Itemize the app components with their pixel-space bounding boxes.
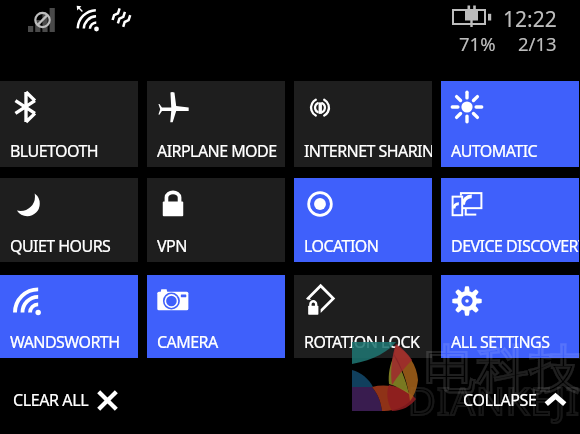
button[interactable]: COLLAPSE bbox=[463, 389, 566, 411]
staticText: WANDSWORTH bbox=[10, 331, 120, 353]
button[interactable]: BLUETOOTH bbox=[0, 81, 138, 167]
button[interactable]: VPN bbox=[147, 178, 285, 262]
button[interactable]: ROTATION LOCK bbox=[294, 275, 432, 358]
staticText: AUTOMATIC bbox=[451, 140, 538, 162]
staticText: COLLAPSE bbox=[463, 389, 537, 411]
button[interactable]: ALL SETTINGS bbox=[441, 275, 579, 358]
staticText: 2/13 bbox=[518, 31, 557, 56]
staticText: CLEAR ALL bbox=[13, 389, 89, 411]
staticText: LOCATION bbox=[304, 235, 379, 257]
staticText: 电科技 bbox=[423, 337, 580, 403]
button[interactable]: AUTOMATIC bbox=[441, 81, 579, 167]
staticText: 12:22 bbox=[503, 5, 557, 34]
staticText: DIANKEJI bbox=[408, 374, 580, 426]
staticText: ALL SETTINGS bbox=[451, 331, 550, 353]
staticText: QUIET HOURS bbox=[10, 235, 111, 257]
button[interactable]: CAMERA bbox=[147, 275, 285, 358]
button[interactable]: DEVICE DISCOVERY bbox=[441, 178, 579, 262]
button[interactable]: WANDSWORTH bbox=[0, 275, 138, 358]
button[interactable]: CLEAR ALL bbox=[13, 389, 118, 411]
staticText: CAMERA bbox=[157, 331, 218, 353]
button[interactable]: LOCATION bbox=[294, 178, 432, 262]
staticText: BLUETOOTH bbox=[10, 140, 99, 162]
button[interactable]: INTERNET SHARING bbox=[294, 81, 432, 167]
button[interactable]: QUIET HOURS bbox=[0, 178, 138, 262]
staticText: AIRPLANE MODE bbox=[157, 140, 277, 162]
staticText: ROTATION LOCK bbox=[304, 331, 420, 353]
staticText: 71% bbox=[459, 31, 496, 56]
staticText: VPN bbox=[157, 235, 187, 257]
staticText: DEVICE DISCOVERY bbox=[451, 235, 579, 257]
staticText: INTERNET SHARING bbox=[304, 140, 432, 162]
button[interactable]: AIRPLANE MODE bbox=[147, 81, 285, 167]
